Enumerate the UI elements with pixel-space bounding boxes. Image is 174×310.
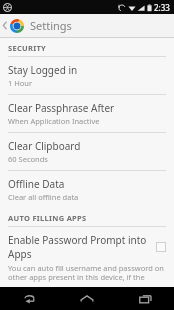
button[interactable]: Up [0,14,24,37]
button[interactable]: Stay Logged in [0,57,174,94]
staticText: Stay Logged in [8,63,78,77]
staticText: 2:33 [154,2,170,13]
staticText: AUTO FILLING APPS [8,213,87,223]
button[interactable]: Home [58,287,116,310]
button[interactable]: Back [0,287,58,310]
staticText: Clear Clipboard [8,139,81,153]
staticText: Enable Password Prompt into Apps [8,233,152,261]
button[interactable]: Clear Clipboard [0,133,174,170]
button[interactable]: Clear Passphrase After [0,95,174,132]
staticText: You can auto fill username and password … [8,263,166,283]
staticText: Clear all offline data [8,192,79,202]
staticText: 60 Seconds [8,154,48,164]
staticText: Offline Data [8,177,65,191]
button[interactable]: Enable Password Prompt into Apps [0,227,174,287]
button[interactable]: Offline Data [0,171,174,208]
staticText: SECURITY [8,43,47,53]
staticText: 1 Hour [8,78,33,88]
staticText: Settings [30,18,72,33]
staticText: Clear Passphrase After [8,101,115,115]
staticText: When Application Inactive [8,116,100,126]
button[interactable]: Recent apps [116,287,174,310]
